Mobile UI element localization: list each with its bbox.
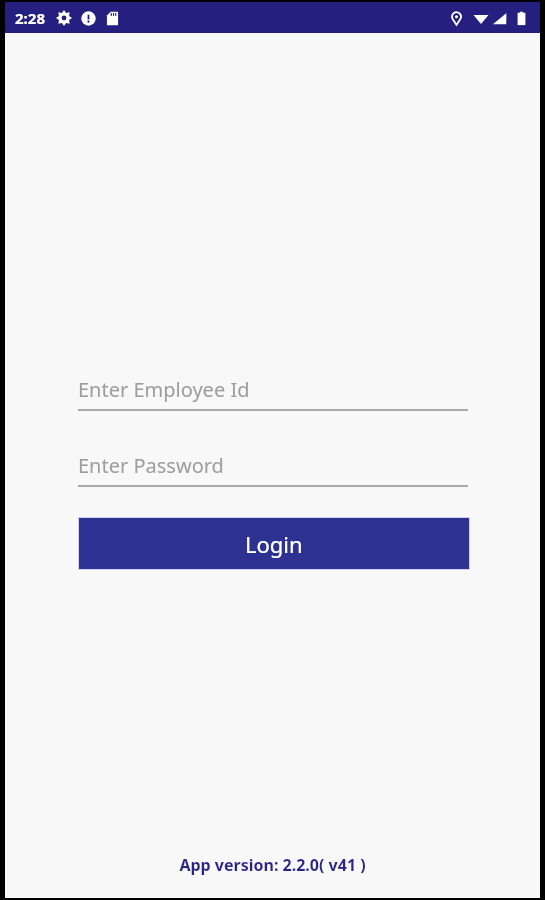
staticText: App version: 2.2.0( v41 )	[5, 854, 540, 876]
button[interactable]: Login	[78, 517, 470, 570]
staticText: Enter Password	[78, 452, 224, 479]
other: Alert	[81, 11, 96, 26]
other: SD card	[105, 11, 120, 26]
staticText: Enter Employee Id	[78, 376, 250, 403]
staticText: Login	[245, 529, 303, 559]
button[interactable]: Enter Employee Id	[78, 373, 468, 411]
other: Wi-Fi	[473, 10, 489, 26]
staticText: 2:28	[15, 8, 45, 28]
button[interactable]: Enter Password	[78, 449, 468, 487]
other: Location	[449, 11, 464, 26]
other: Settings	[56, 10, 72, 26]
other: Battery	[514, 11, 529, 26]
other: Signal	[492, 11, 507, 26]
